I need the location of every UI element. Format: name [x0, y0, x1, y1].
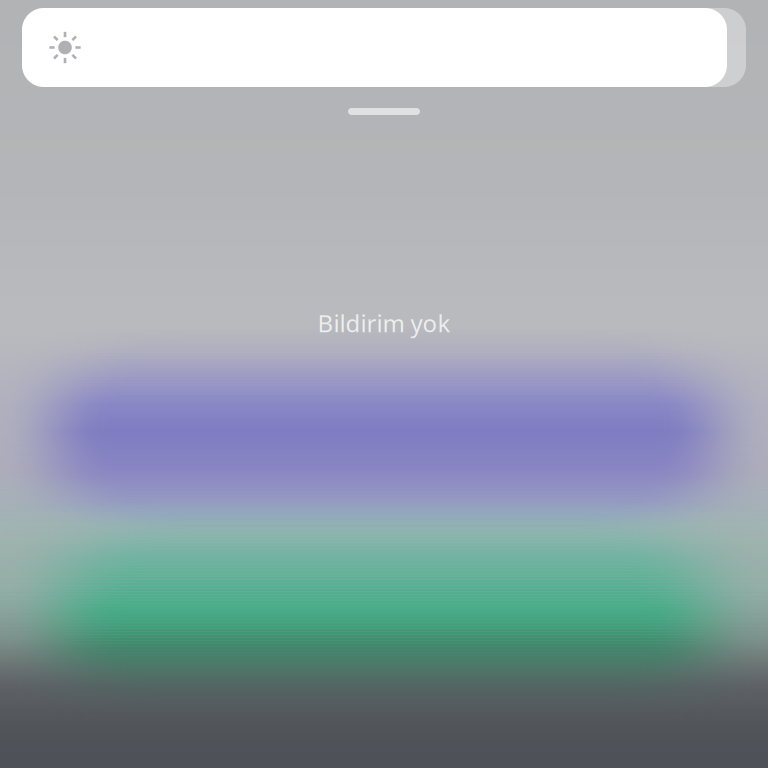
staticText: Bildirim yok: [317, 307, 450, 339]
button[interactable]: Brightness: [0, 0, 768, 95]
